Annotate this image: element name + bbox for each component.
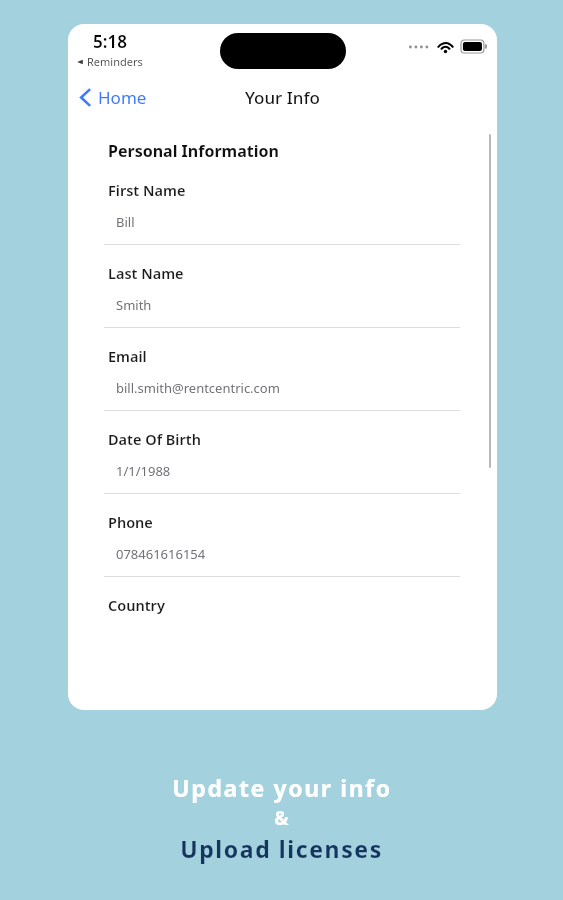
button[interactable]: Home	[68, 82, 155, 113]
staticText: Bill	[116, 213, 135, 231]
staticText: Smith	[116, 296, 152, 314]
staticText: Upload licenses	[180, 833, 383, 864]
staticText: Email	[108, 346, 147, 366]
staticText: &	[274, 805, 289, 831]
staticText: Your Info	[245, 86, 320, 109]
staticText: 1/1/1988	[116, 462, 171, 480]
staticText: bill.smith@rentcentric.com	[116, 379, 280, 397]
staticText: Last Name	[108, 263, 184, 283]
staticText: Reminders	[87, 54, 143, 69]
button[interactable]: Country	[104, 577, 460, 615]
button[interactable]: First Name	[104, 162, 460, 245]
staticText: Home	[98, 86, 147, 109]
staticText: Update your info	[172, 772, 392, 803]
staticText: Personal Information	[108, 140, 279, 162]
button[interactable]: Last Name	[104, 245, 460, 328]
staticText: 5:18	[93, 30, 127, 53]
button[interactable]: Date Of Birth	[104, 411, 460, 494]
staticText: 078461616154	[116, 545, 206, 563]
button[interactable]: Email	[104, 328, 460, 411]
staticText: Date Of Birth	[108, 429, 201, 449]
staticText: Country	[108, 595, 165, 615]
staticText: First Name	[108, 180, 186, 200]
staticText: Phone	[108, 512, 153, 532]
button[interactable]: Phone	[104, 494, 460, 577]
